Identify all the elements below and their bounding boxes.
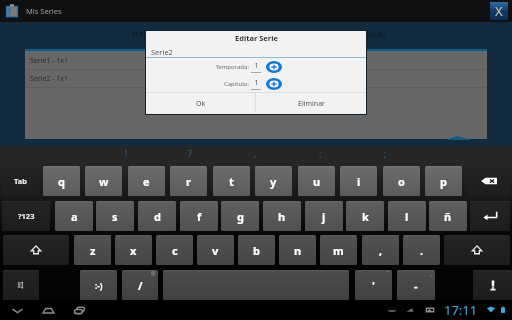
button[interactable]: q bbox=[43, 166, 80, 196]
staticText: SERIES bbox=[132, 30, 154, 39]
button[interactable]: r bbox=[170, 166, 207, 196]
staticText: m bbox=[333, 243, 344, 258]
button[interactable]: Close bbox=[490, 2, 508, 20]
staticText: ! bbox=[120, 148, 132, 159]
staticText: b bbox=[253, 243, 260, 258]
staticText: w bbox=[99, 174, 109, 189]
button[interactable]: n bbox=[279, 235, 316, 265]
button[interactable]: Voice input bbox=[473, 270, 512, 300]
button[interactable]: a bbox=[55, 201, 93, 231]
staticText: ' bbox=[372, 278, 375, 293]
button[interactable]: SERIES bbox=[30, 22, 256, 46]
staticText: d bbox=[154, 209, 161, 224]
button[interactable]: - bbox=[397, 270, 435, 300]
button[interactable]: Ok bbox=[146, 93, 255, 114]
button[interactable]: Shift bbox=[3, 235, 69, 265]
button[interactable]: y bbox=[255, 166, 292, 196]
button[interactable]: Enter bbox=[470, 201, 510, 231]
button[interactable]: Backspace bbox=[467, 166, 510, 196]
staticText: s bbox=[112, 209, 118, 224]
staticText: x bbox=[130, 243, 137, 258]
staticText: Temporada: bbox=[189, 63, 249, 71]
staticText: l bbox=[405, 209, 409, 224]
staticText: / bbox=[138, 278, 143, 293]
button[interactable]: v bbox=[197, 235, 234, 265]
button[interactable]: Keyboard settings bbox=[3, 270, 39, 300]
staticText: z bbox=[90, 243, 96, 258]
staticText: X bbox=[495, 2, 503, 20]
button[interactable]: Increase Capítulo: bbox=[265, 77, 283, 91]
button[interactable]: Home bbox=[37, 300, 59, 320]
button[interactable]: l bbox=[388, 201, 426, 231]
staticText: @ bbox=[151, 270, 156, 277]
button[interactable]: ?123 bbox=[2, 201, 50, 231]
button[interactable]: s bbox=[96, 201, 134, 231]
staticText: j bbox=[322, 209, 326, 224]
button[interactable]: ñ bbox=[429, 201, 467, 231]
button[interactable]: Serie2 - 1x1 bbox=[25, 70, 487, 87]
button[interactable]: Serie1 - 1x1 bbox=[25, 52, 487, 69]
button[interactable]: e bbox=[128, 166, 165, 196]
button[interactable]: :-) bbox=[80, 270, 117, 300]
staticText: e bbox=[143, 174, 150, 189]
staticText: ; bbox=[379, 148, 391, 159]
button[interactable]: Increase Temporada: bbox=[265, 60, 283, 74]
button[interactable]: z bbox=[74, 235, 111, 265]
staticText: a bbox=[71, 209, 78, 224]
staticText: f bbox=[197, 209, 202, 224]
button[interactable]: x bbox=[115, 235, 152, 265]
button[interactable]: b bbox=[238, 235, 275, 265]
staticText: u bbox=[313, 174, 321, 189]
staticText: t bbox=[229, 174, 234, 189]
staticText: Tab bbox=[14, 176, 27, 186]
staticText: h bbox=[278, 209, 286, 224]
button[interactable]: h bbox=[263, 201, 301, 231]
staticText: Mis Series bbox=[26, 6, 62, 16]
button[interactable]: d bbox=[138, 201, 176, 231]
staticText: - bbox=[414, 278, 418, 293]
button[interactable]: u bbox=[298, 166, 335, 196]
staticText: ? bbox=[184, 148, 196, 159]
button[interactable]: Shift bbox=[444, 235, 510, 265]
staticText: 1 bbox=[254, 61, 259, 71]
staticText: , bbox=[379, 243, 383, 258]
button[interactable]: m bbox=[320, 235, 357, 265]
button[interactable]: f bbox=[180, 201, 218, 231]
button[interactable]: Tab bbox=[2, 166, 39, 196]
staticText: PELICULAS bbox=[351, 30, 386, 39]
button[interactable]: Eliminar bbox=[256, 93, 366, 114]
staticText: y bbox=[270, 174, 277, 189]
button[interactable]: w bbox=[85, 166, 122, 196]
button[interactable]: g bbox=[221, 201, 259, 231]
staticText: Ok bbox=[196, 99, 206, 109]
button[interactable]: t bbox=[213, 166, 250, 196]
button[interactable]: ' bbox=[355, 270, 392, 300]
button[interactable]: j bbox=[305, 201, 343, 231]
button[interactable]: Recents bbox=[68, 300, 90, 320]
button[interactable]: o bbox=[383, 166, 420, 196]
staticText: : bbox=[314, 148, 326, 159]
button[interactable]: p bbox=[425, 166, 462, 196]
staticText: _ bbox=[430, 270, 433, 277]
button[interactable]: Back bbox=[6, 300, 28, 320]
button[interactable]: PELICULAS bbox=[256, 22, 481, 46]
staticText: Serie1 - 1x1 bbox=[30, 56, 69, 66]
staticText: ?123 bbox=[18, 211, 35, 221]
button[interactable]: k bbox=[346, 201, 384, 231]
staticText: p bbox=[440, 174, 447, 189]
staticText: n bbox=[294, 243, 302, 258]
staticText: 1 bbox=[254, 78, 259, 88]
staticText: Editar Serie bbox=[235, 33, 278, 43]
staticText: ñ bbox=[444, 209, 452, 224]
staticText: v bbox=[212, 243, 219, 258]
staticText: r bbox=[186, 174, 191, 189]
staticText: g bbox=[237, 209, 244, 224]
button[interactable] bbox=[163, 270, 349, 300]
button[interactable]: c bbox=[156, 235, 193, 265]
staticText: Serie2 bbox=[151, 47, 173, 57]
button[interactable]: , bbox=[362, 235, 399, 265]
button[interactable]: i bbox=[340, 166, 377, 196]
button[interactable]: / bbox=[122, 270, 158, 300]
button[interactable]: . bbox=[403, 235, 440, 265]
staticText: o bbox=[398, 174, 405, 189]
